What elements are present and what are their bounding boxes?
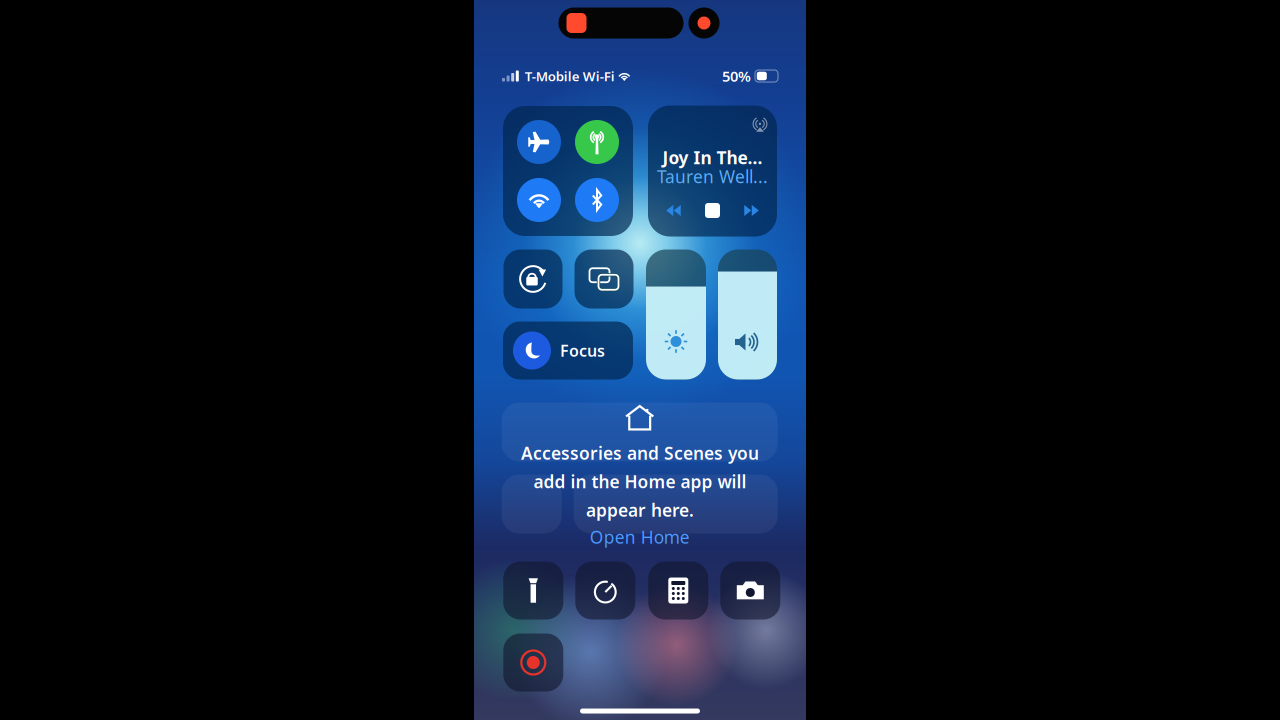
button[interactable]: Flashlight (503, 561, 563, 619)
button[interactable]: Open Home (590, 522, 690, 549)
button[interactable]: Focus (503, 321, 633, 379)
button[interactable] (575, 178, 619, 222)
button[interactable]: Camera (720, 561, 780, 619)
staticText: Accessories and Scenes you add in the Ho… (521, 441, 759, 522)
staticText: Open Home (590, 526, 690, 549)
button[interactable]: Calculator (648, 561, 708, 619)
staticText: Focus (560, 340, 605, 361)
staticText: Tauren Well... (657, 165, 768, 188)
staticText: T-Mobile Wi-Fi (519, 67, 618, 85)
button[interactable] (517, 120, 561, 164)
button[interactable]: Screen Record (503, 633, 563, 691)
button[interactable]: Brightness (646, 249, 706, 379)
button[interactable]: Screen Mirroring (574, 249, 633, 308)
button[interactable]: Stop (697, 199, 727, 221)
button[interactable] (575, 120, 619, 164)
button[interactable]: Volume (718, 249, 777, 379)
button[interactable]: Timer (575, 561, 635, 619)
button[interactable]: Rewind (658, 199, 688, 221)
staticText: 50% (722, 66, 751, 86)
button[interactable]: Joy In The... (648, 105, 777, 236)
staticText: Joy In The... (662, 146, 762, 169)
button[interactable]: Fast forward (736, 199, 766, 221)
button[interactable] (517, 178, 561, 222)
button[interactable]: Rotation Lock (503, 249, 562, 308)
